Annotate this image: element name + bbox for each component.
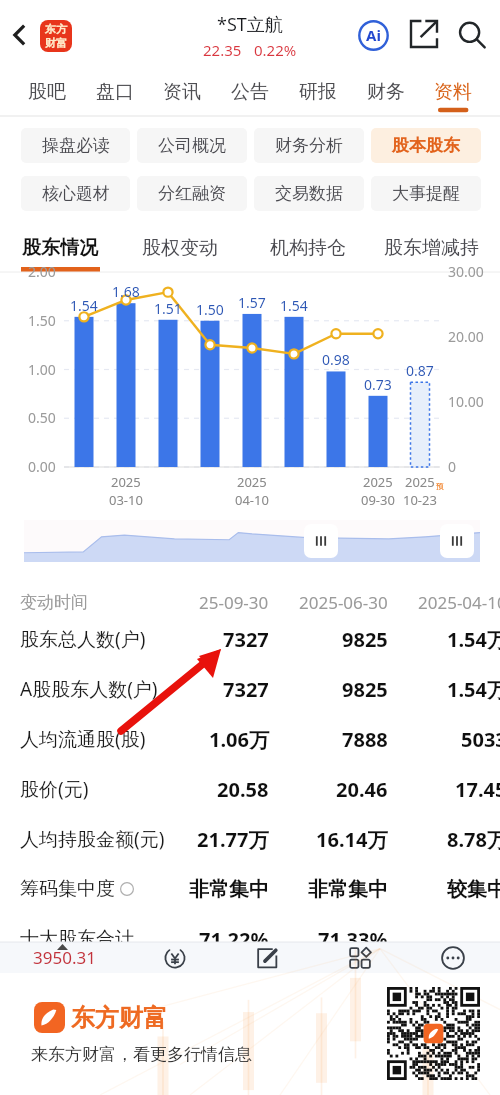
button[interactable]: 核心题材 [21,176,130,211]
staticText: 操盘必读 [42,135,110,156]
staticText: 71.33% [318,926,388,953]
staticText: 2025 [111,473,141,491]
staticText: 十大股东合计 [20,927,134,951]
staticText: 2.00 [28,262,56,281]
button[interactable]: 股东情况 [5,231,115,265]
staticText: 研报 [299,80,337,104]
button[interactable]: 公告 [220,74,280,110]
staticText: 财富 [45,36,67,50]
staticText: 较集中 [447,877,500,902]
button[interactable]: East Money home [40,20,72,52]
button[interactable]: More tools [336,942,384,973]
staticText: 公告 [231,80,269,104]
staticText: 16.14万 [316,826,388,853]
staticText: 财务 [367,80,405,104]
button[interactable]: 股东总人数(户) [0,614,500,664]
staticText: 2025-04-10 [418,591,500,614]
staticText: 0.98 [322,350,350,369]
button[interactable]: 财务分析 [254,128,364,163]
button[interactable]: 资料 [423,74,483,110]
staticText: 股东增减持 [384,236,479,260]
staticText: 25-09-30 [199,591,269,614]
staticText: 2025 [363,473,393,491]
button[interactable]: A股股东人数(户) [0,664,500,714]
staticText: 0.22% [254,40,297,60]
staticText: 0.00 [28,457,56,476]
staticText: 03-10 [109,491,143,509]
button[interactable]: 交易数据 [254,176,364,211]
staticText: 0.87 [406,361,434,380]
button[interactable]: 盘口 [85,74,145,110]
staticText: 非常集中 [189,877,269,902]
staticText: 资讯 [163,80,201,104]
button[interactable]: 股权变动 [125,231,235,265]
staticText: 30.00 [448,262,484,281]
button[interactable]: 资讯 [152,74,212,110]
button[interactable]: More [429,942,477,973]
button[interactable]: 3950.31 [8,942,120,973]
staticText: 1.51 [154,299,182,318]
staticText: 核心题材 [42,183,110,204]
button[interactable]: 公司概况 [137,128,247,163]
button[interactable]: 股吧 [17,74,77,110]
staticText: 股权变动 [142,236,218,260]
button[interactable]: 人均流通股(股) [0,714,500,764]
button[interactable]: 研报 [288,74,348,110]
button[interactable]: AI assistant [353,15,393,55]
staticText: 1.54 [70,296,98,315]
staticText: 股东情况 [22,236,98,260]
staticText: 机构持仓 [270,236,346,260]
staticText: 17.45 [455,776,500,803]
staticText: 股吧 [28,80,66,104]
staticText: 10-23 [403,491,437,509]
staticText: 预 [436,481,444,491]
staticText: 71.22% [199,926,269,953]
staticText: 东方财富 [71,1003,167,1033]
button[interactable]: Share [404,15,444,55]
button[interactable]: Left range handle [304,524,338,558]
staticText: 东方 [45,22,67,36]
staticText: 1.50 [28,311,56,330]
button[interactable]: 股本股东 [371,128,481,163]
button[interactable]: 变动时间 [0,590,500,614]
button[interactable]: 股东增减持 [376,231,486,265]
staticText: 20.46 [336,776,388,803]
staticText: 2025-06-30 [299,591,388,614]
staticText: 资料 [434,80,472,104]
staticText: Ai [366,25,381,45]
staticText: 5033 [461,726,500,753]
button[interactable]: Back [3,18,37,52]
staticText: 04-10 [235,491,269,509]
button[interactable]: 财务 [356,74,416,110]
button[interactable]: 十大股东合计 [0,914,500,964]
button[interactable]: Search [452,15,492,55]
staticText: A股股东人数(户) [20,676,158,702]
staticText: 20.58 [217,776,269,803]
button[interactable]: 大事提醒 [371,176,481,211]
button[interactable]: 机构持仓 [253,231,363,265]
button[interactable]: 筹码集中度 [0,864,500,914]
staticText: 7327 [223,626,269,653]
staticText: 1.54 [280,296,308,315]
staticText: 大事提醒 [392,183,460,204]
staticText: 8.78万 [447,826,500,853]
staticText: 2025 [237,473,267,491]
button[interactable]: Right range handle [440,524,474,558]
staticText: 1.00 [28,360,56,379]
staticText: 20.00 [448,327,484,346]
staticText: 21.77万 [197,826,269,853]
staticText: 7888 [342,726,388,753]
staticText: 1.68 [112,282,140,301]
button[interactable]: Write post [243,942,291,973]
button[interactable]: 股价(元) [0,764,500,814]
staticText: 2025 [405,473,435,491]
button[interactable]: Trade [151,942,199,973]
button[interactable]: 分红融资 [137,176,247,211]
staticText: 1.50 [196,300,224,319]
button[interactable]: 操盘必读 [21,128,130,163]
staticText: 9825 [342,626,388,653]
staticText: 来东方财富，看更多行情信息 [31,1044,252,1065]
staticText: 财务分析 [275,135,343,156]
button[interactable]: 人均持股金额(元) [0,814,500,864]
staticText: 1.54万 [447,626,500,653]
